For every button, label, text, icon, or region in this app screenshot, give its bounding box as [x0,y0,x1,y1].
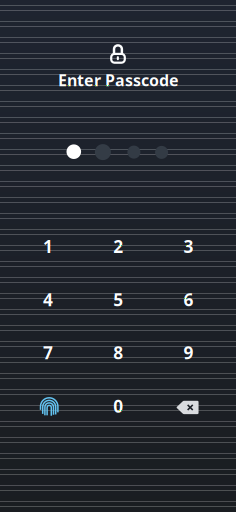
button[interactable]: Delete [156,384,220,430]
staticText: 4 [43,288,53,311]
button[interactable]: 2 [86,223,150,269]
staticText: 7 [43,341,53,364]
button[interactable]: 9 [157,329,221,375]
staticText: 1 [43,235,53,258]
staticText: 3 [184,235,194,258]
button[interactable]: 4 [16,276,80,322]
button[interactable]: 0 [86,383,150,429]
button[interactable]: 8 [86,329,150,375]
button[interactable]: 5 [86,276,150,322]
staticText: 2 [113,235,123,258]
button[interactable]: Unlock with Touch ID [17,384,81,430]
button[interactable]: 3 [157,223,221,269]
button[interactable]: 7 [16,329,80,375]
button[interactable]: 1 [16,223,80,269]
staticText: Enter Passcode [58,69,179,91]
staticText: 0 [113,394,123,417]
staticText: 5 [113,288,123,311]
staticText: 6 [184,288,194,311]
staticText: 8 [113,341,123,364]
staticText: 9 [184,341,194,364]
button[interactable]: 6 [157,276,221,322]
